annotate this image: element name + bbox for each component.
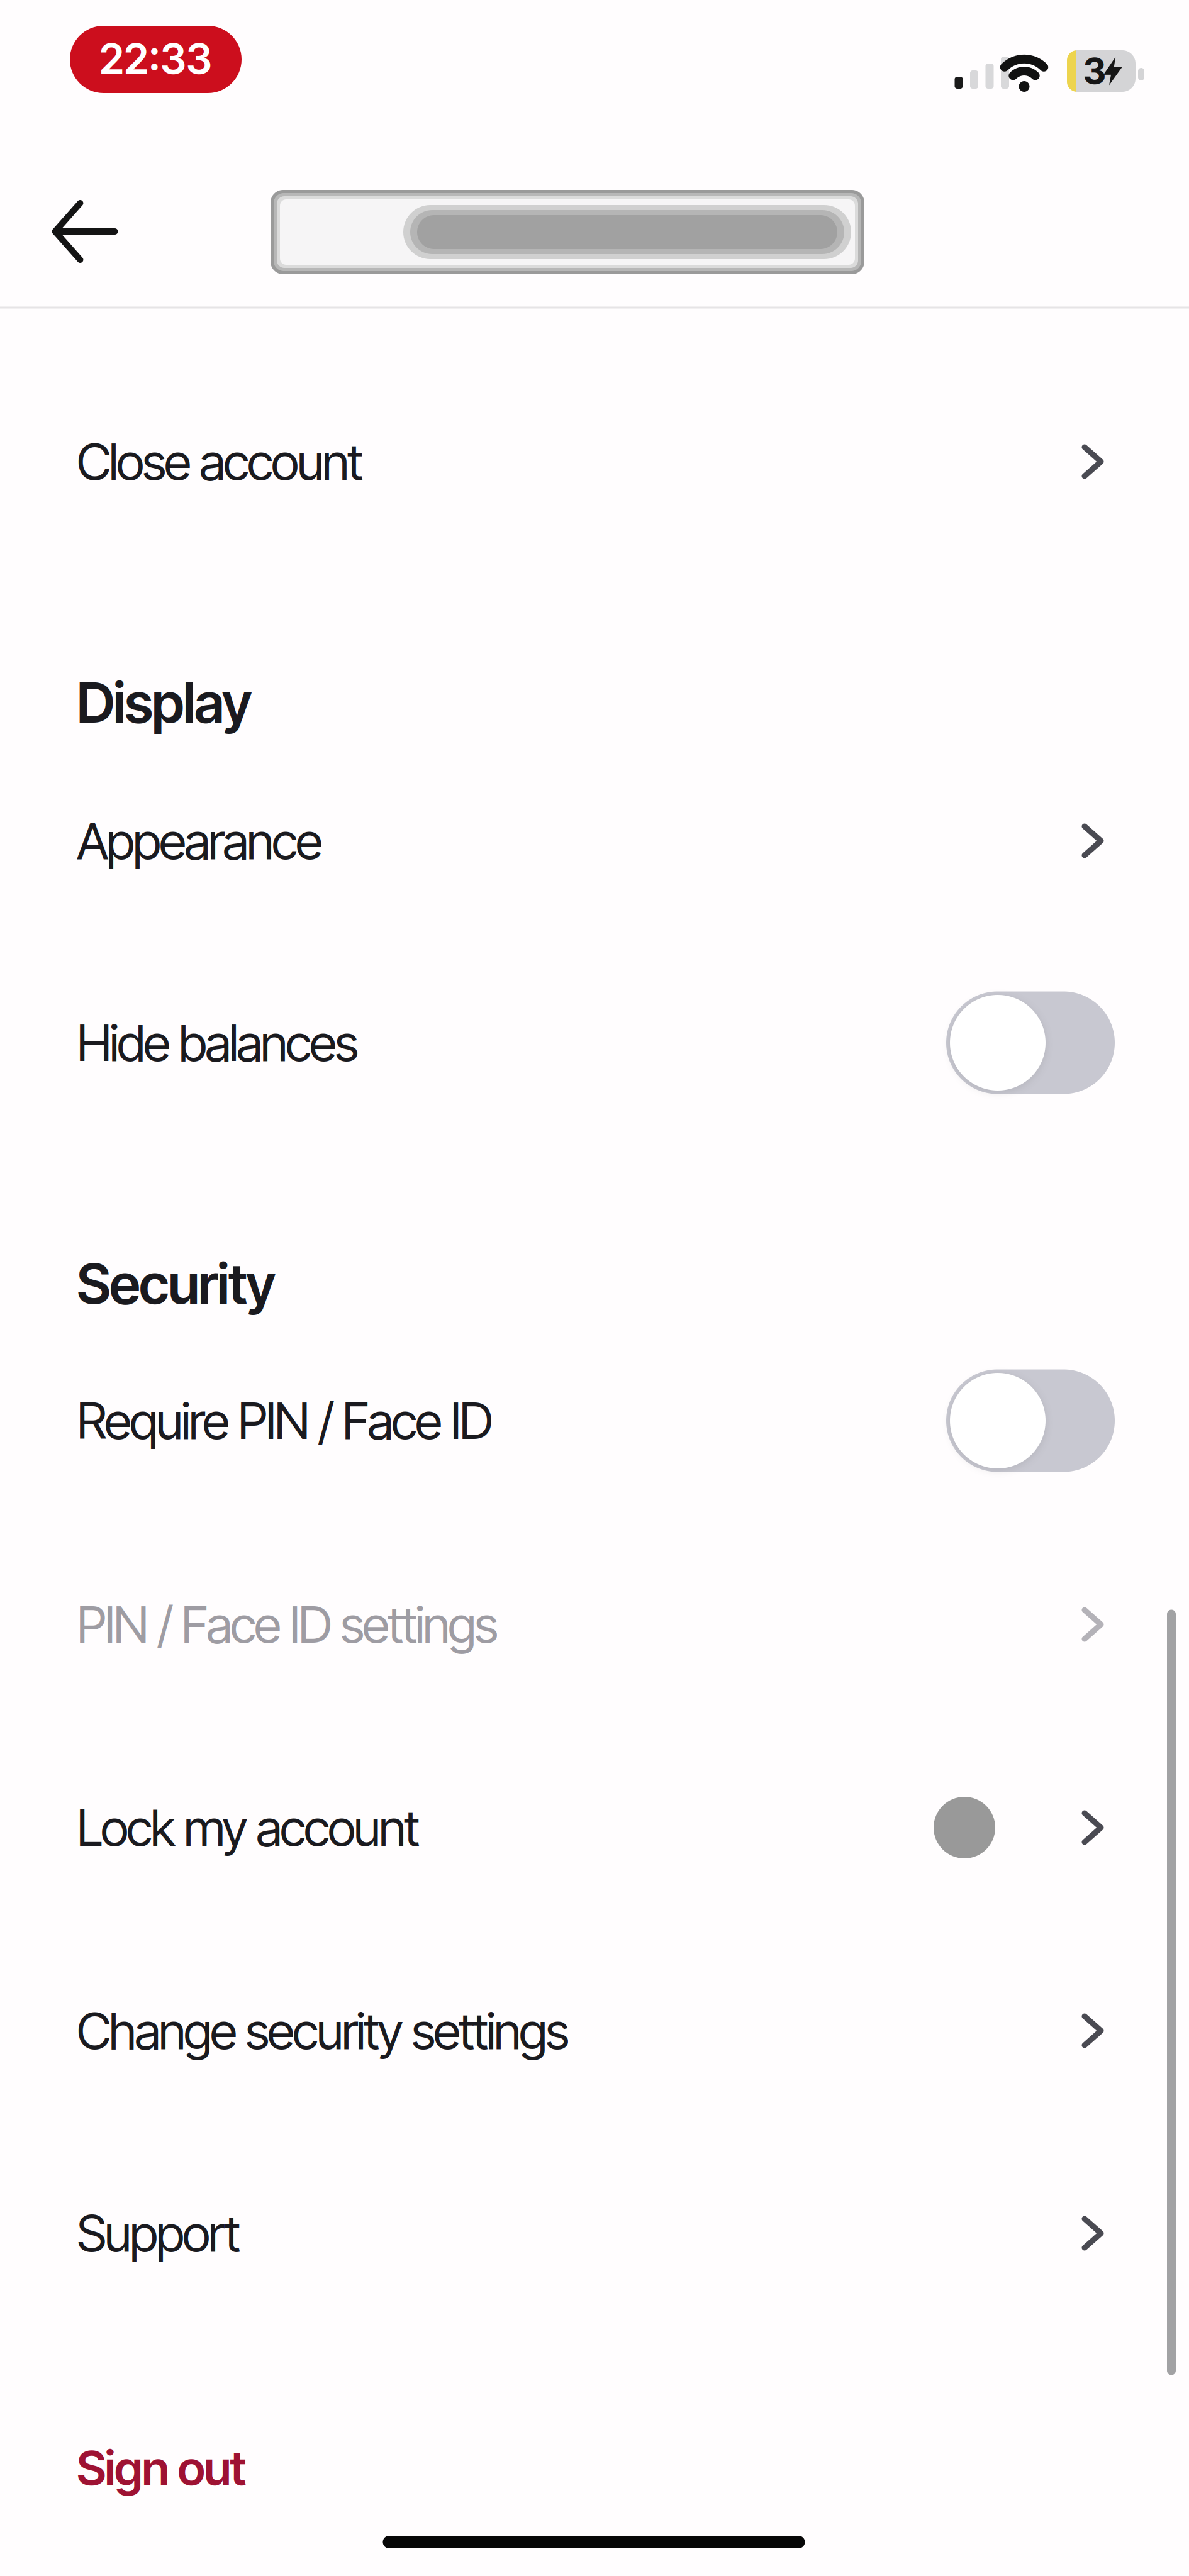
staticText: Change security settings: [77, 2000, 569, 2061]
staticText: 22:33: [99, 33, 212, 84]
button[interactable]: Support: [77, 2180, 1115, 2287]
button[interactable]: Change security settings: [77, 1977, 1115, 2084]
button[interactable]: Close account: [77, 408, 1115, 515]
button[interactable]: PIN / Face ID settings: [77, 1571, 1115, 1678]
staticText: Lock my account: [77, 1797, 420, 1858]
button[interactable]: Off: [946, 991, 1115, 1094]
staticText: Hide balances: [77, 1012, 359, 1073]
staticText: Security: [77, 1250, 276, 1317]
staticText: PIN / Face ID settings: [77, 1594, 498, 1655]
button[interactable]: Off: [946, 1369, 1115, 1472]
staticText: Sign out: [77, 2439, 246, 2497]
staticText: Require PIN / Face ID: [77, 1390, 493, 1451]
staticText: Display: [77, 669, 252, 736]
button[interactable]: Screen recording 22:33: [70, 26, 242, 93]
staticText: 3: [1083, 49, 1106, 93]
staticText: Support: [77, 2203, 240, 2264]
button[interactable]: Back: [55, 203, 115, 260]
staticText: Close account: [77, 431, 363, 492]
button[interactable]: Lock my account: [77, 1774, 1115, 1881]
staticText: Appearance: [77, 810, 323, 871]
button[interactable]: Appearance: [77, 787, 1115, 894]
button[interactable]: Sign out: [77, 2427, 246, 2509]
